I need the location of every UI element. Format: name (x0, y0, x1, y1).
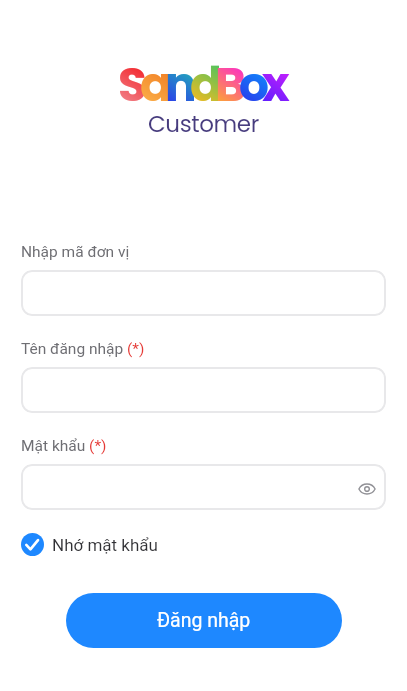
button[interactable] (21, 270, 386, 316)
button[interactable]: Đăng nhập (66, 593, 342, 648)
staticText: d (190, 52, 222, 118)
button[interactable]: Show password (348, 465, 386, 509)
button[interactable]: Show password (21, 464, 386, 510)
staticText: S (118, 52, 147, 118)
staticText: Mật khẩu (*) (21, 437, 107, 455)
staticText: o (239, 52, 269, 118)
staticText: x (262, 52, 290, 118)
staticText: B (215, 52, 246, 118)
staticText: a (140, 52, 172, 118)
staticText: n (165, 52, 197, 118)
staticText: Tên đăng nhập (*) (21, 340, 145, 358)
staticText: Nhớ mật khẩu (52, 535, 158, 555)
button[interactable] (21, 367, 386, 413)
button[interactable]: Nhớ mật khẩu (21, 533, 158, 556)
staticText: Nhập mã đơn vị (21, 243, 130, 261)
staticText: Customer (148, 108, 259, 140)
staticText: Đăng nhập (157, 609, 251, 632)
